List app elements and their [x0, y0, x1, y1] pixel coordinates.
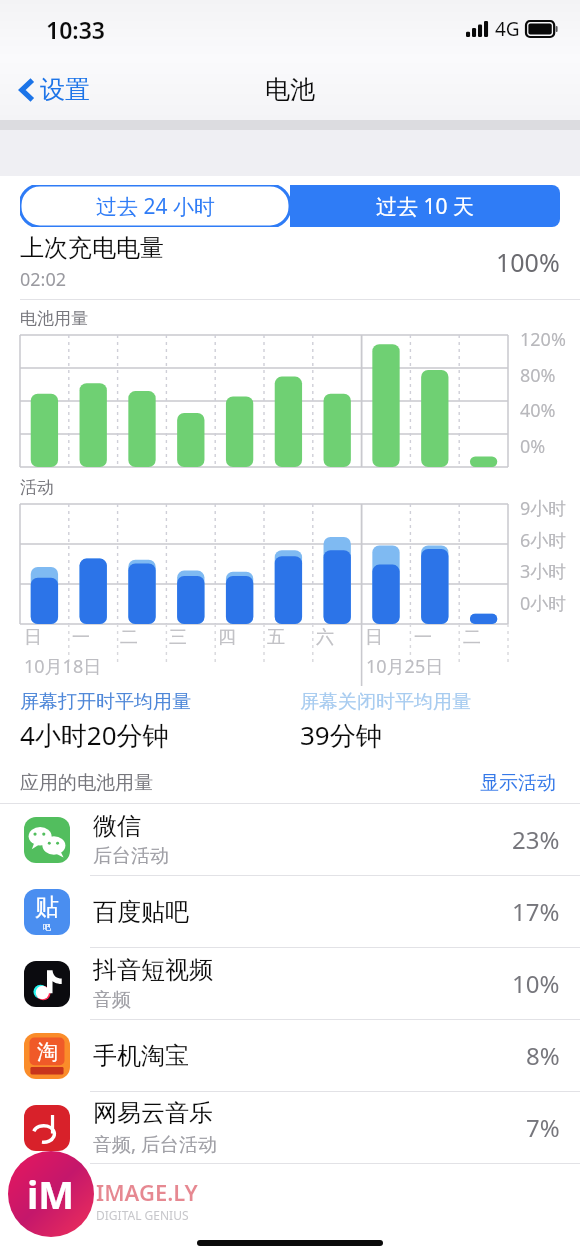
staticText: 一 [72, 626, 90, 649]
staticText: 网易云音乐 [93, 1098, 213, 1128]
staticText: 0小时 [520, 591, 567, 616]
button[interactable]: 设置 [16, 68, 94, 111]
staticText: DIGITAL GENIUS [96, 1207, 189, 1223]
staticText: 后台活动 [93, 844, 169, 868]
button[interactable]: 显示活动 [476, 767, 560, 799]
staticText: 三 [169, 626, 187, 649]
staticText: 屏幕关闭时平均用量 [300, 690, 471, 714]
staticText: 10月25日 [366, 654, 444, 679]
other: 百度贴吧 [24, 889, 70, 935]
staticText: 四 [218, 626, 236, 649]
staticText: 39分钟 [300, 717, 382, 753]
staticText: 10月18日 [24, 654, 102, 679]
button[interactable]: 过去 24 小时 [20, 185, 290, 227]
staticText: IMAGE.LY [96, 1177, 198, 1207]
staticText: 微信 [93, 811, 141, 841]
staticText: 6小时 [520, 528, 567, 553]
staticText: 10% [512, 967, 560, 1000]
staticText: 二 [463, 626, 481, 649]
staticText: 百度贴吧 [93, 897, 189, 927]
staticText: 7% [526, 1111, 560, 1144]
staticText: 10:33 [46, 14, 105, 45]
staticText: 0% [520, 434, 546, 459]
staticText: 80% [520, 363, 556, 388]
staticText: 电池 [265, 74, 315, 105]
staticText: 一 [414, 626, 432, 649]
staticText: 9小时 [520, 496, 567, 521]
button[interactable]: 过去 10 天 [290, 185, 560, 227]
button[interactable]: 微信 [0, 804, 580, 875]
staticText: 过去 24 小时 [96, 192, 215, 221]
staticText: 4小时20分钟 [20, 717, 169, 753]
staticText: 日 [365, 626, 383, 649]
staticText: 音频, 后台活动 [93, 1131, 218, 1157]
button[interactable]: 抖音短视频 [0, 948, 580, 1019]
staticText: 六 [316, 626, 334, 649]
other: 网易云音乐 [24, 1105, 70, 1151]
staticText: 手机淘宝 [93, 1041, 189, 1071]
staticText: 淘 [37, 1039, 58, 1065]
staticText: 电池用量 [20, 308, 88, 329]
staticText: 上次充电电量 [20, 233, 164, 263]
staticText: 贴 [35, 892, 59, 922]
staticText: 设置 [40, 74, 90, 105]
staticText: 应用的电池用量 [20, 771, 153, 795]
staticText: 活动 [20, 477, 54, 498]
staticText: 3小时 [520, 559, 567, 584]
staticText: 4G [495, 16, 520, 42]
other: 手机淘宝 [24, 1033, 70, 1079]
button[interactable]: 网易云音乐 [0, 1092, 580, 1163]
staticText: 120% [520, 327, 566, 352]
staticText: 40% [520, 398, 556, 423]
staticText: 17% [512, 895, 560, 928]
staticText: 23% [512, 823, 560, 856]
staticText: 显示活动 [480, 771, 556, 795]
staticText: 屏幕打开时平均用量 [20, 690, 191, 714]
button[interactable]: 百度贴吧 [0, 876, 580, 947]
staticText: 二 [120, 626, 138, 649]
staticText: 日 [24, 626, 42, 649]
button[interactable]: 手机淘宝 [0, 1020, 580, 1091]
staticText: 过去 10 天 [376, 192, 474, 221]
staticText: 吧 [43, 922, 51, 932]
staticText: 8% [526, 1039, 560, 1072]
staticText: 五 [267, 626, 285, 649]
staticText: 音频 [93, 988, 131, 1012]
staticText: 02:02 [20, 267, 67, 292]
other: 微信 [24, 817, 70, 863]
staticText: iM [27, 1168, 75, 1220]
staticText: 抖音短视频 [93, 955, 213, 985]
staticText: 100% [496, 245, 560, 279]
other: 抖音短视频 [24, 961, 70, 1007]
